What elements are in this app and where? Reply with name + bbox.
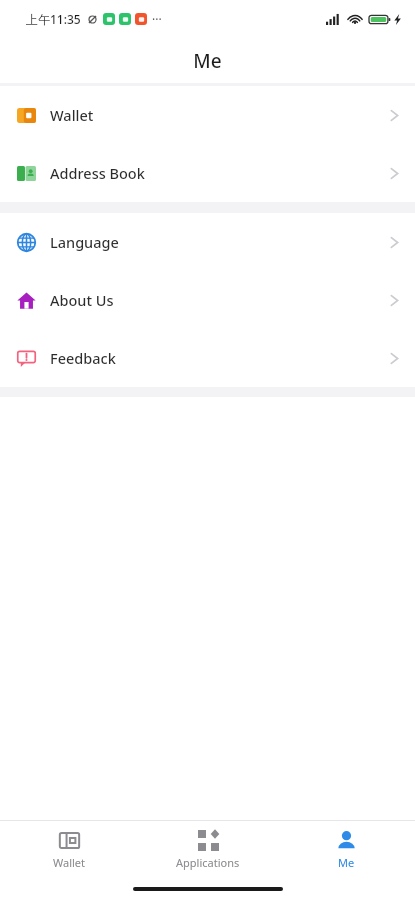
staticText: Me (193, 48, 222, 74)
staticText: Feedback (50, 348, 116, 368)
button[interactable]: Me (277, 830, 415, 870)
button[interactable]: Language (0, 213, 415, 271)
staticText: Applications (176, 855, 240, 870)
button[interactable]: Wallet (0, 86, 415, 144)
staticText: Language (50, 232, 119, 252)
staticText: Wallet (53, 855, 86, 870)
button[interactable]: Wallet (0, 830, 139, 870)
button[interactable]: Applications (139, 830, 277, 870)
button[interactable]: About Us (0, 271, 415, 329)
staticText: 上午11:35 (26, 11, 81, 27)
staticText: Address Book (50, 163, 145, 183)
staticText: Wallet (50, 105, 94, 125)
staticText: About Us (50, 290, 114, 310)
button[interactable]: Feedback (0, 329, 415, 387)
staticText: ··· (152, 11, 162, 27)
button[interactable]: Address Book (0, 144, 415, 202)
staticText: Me (338, 855, 355, 870)
